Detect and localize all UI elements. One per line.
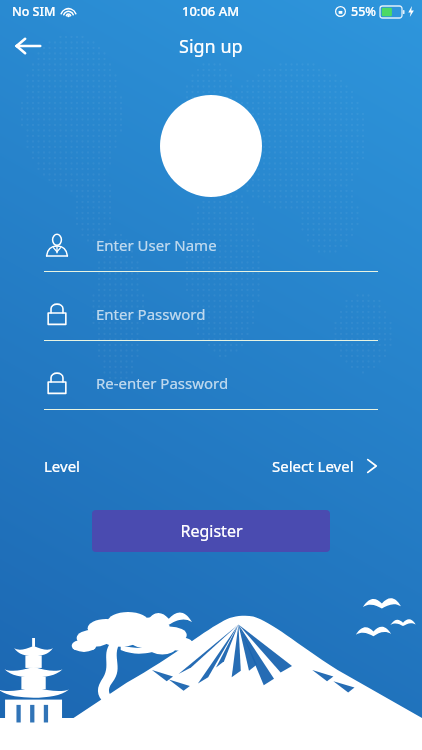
- button[interactable]: Level: [0, 444, 422, 488]
- button[interactable]: Re-enter Password: [44, 357, 378, 426]
- button[interactable]: Enter Password: [44, 288, 378, 357]
- staticText: 55%: [351, 3, 376, 20]
- staticText: Enter User Name: [96, 235, 217, 255]
- staticText: No SIM: [12, 3, 56, 20]
- button[interactable]: Profile photo: [160, 95, 262, 197]
- staticText: Level: [44, 456, 80, 476]
- staticText: Sign up: [179, 34, 243, 59]
- staticText: 10:06 AM: [182, 2, 240, 20]
- staticText: Select Level: [272, 456, 354, 476]
- button[interactable]: Back: [6, 24, 50, 68]
- staticText: Register: [180, 520, 243, 542]
- button[interactable]: Register: [92, 510, 330, 552]
- staticText: Enter Password: [96, 304, 206, 324]
- button[interactable]: Enter User Name: [44, 219, 378, 288]
- staticText: Re-enter Password: [96, 373, 229, 393]
